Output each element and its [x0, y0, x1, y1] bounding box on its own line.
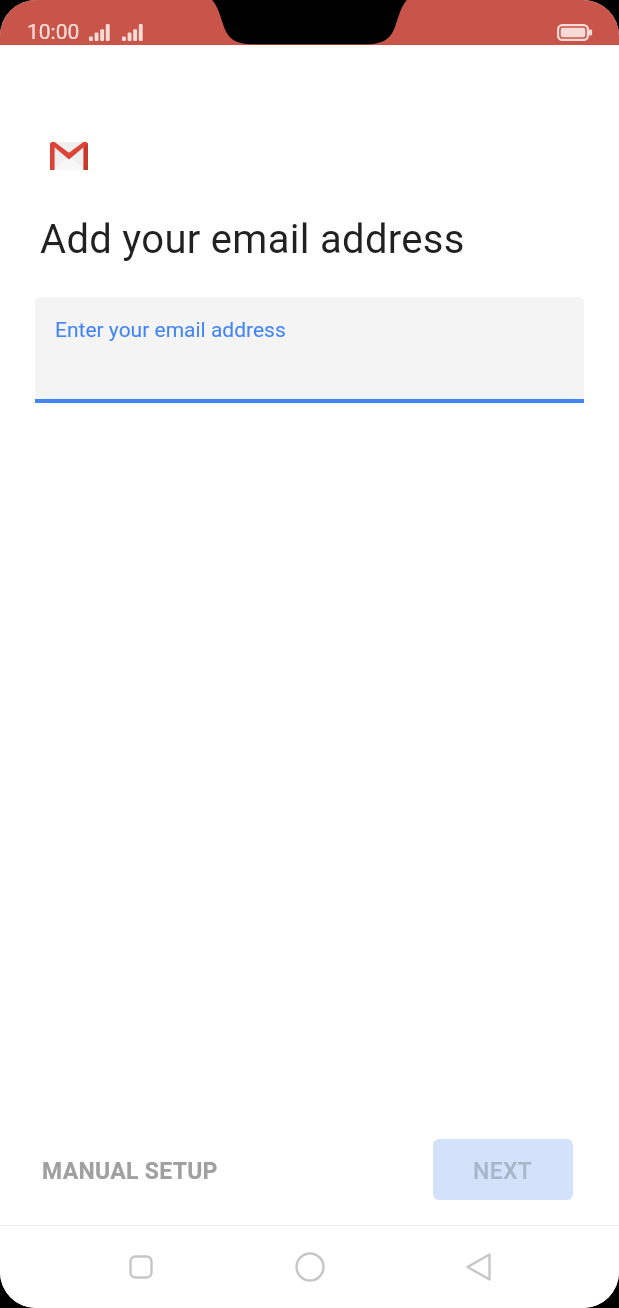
button[interactable]: Enter your email address	[35, 297, 584, 399]
button[interactable]: Home	[282, 1239, 338, 1295]
button[interactable]: Recent apps	[113, 1239, 169, 1295]
staticText: NEXT	[473, 1158, 533, 1185]
button[interactable]: NEXT	[433, 1139, 573, 1200]
button[interactable]: Back	[450, 1239, 506, 1295]
staticText: Add your email address	[40, 216, 465, 263]
staticText: 10:00	[27, 20, 80, 45]
button[interactable]: MANUAL SETUP	[28, 1142, 232, 1197]
staticText: Enter your email address	[55, 318, 286, 343]
staticText: MANUAL SETUP	[42, 1158, 218, 1185]
